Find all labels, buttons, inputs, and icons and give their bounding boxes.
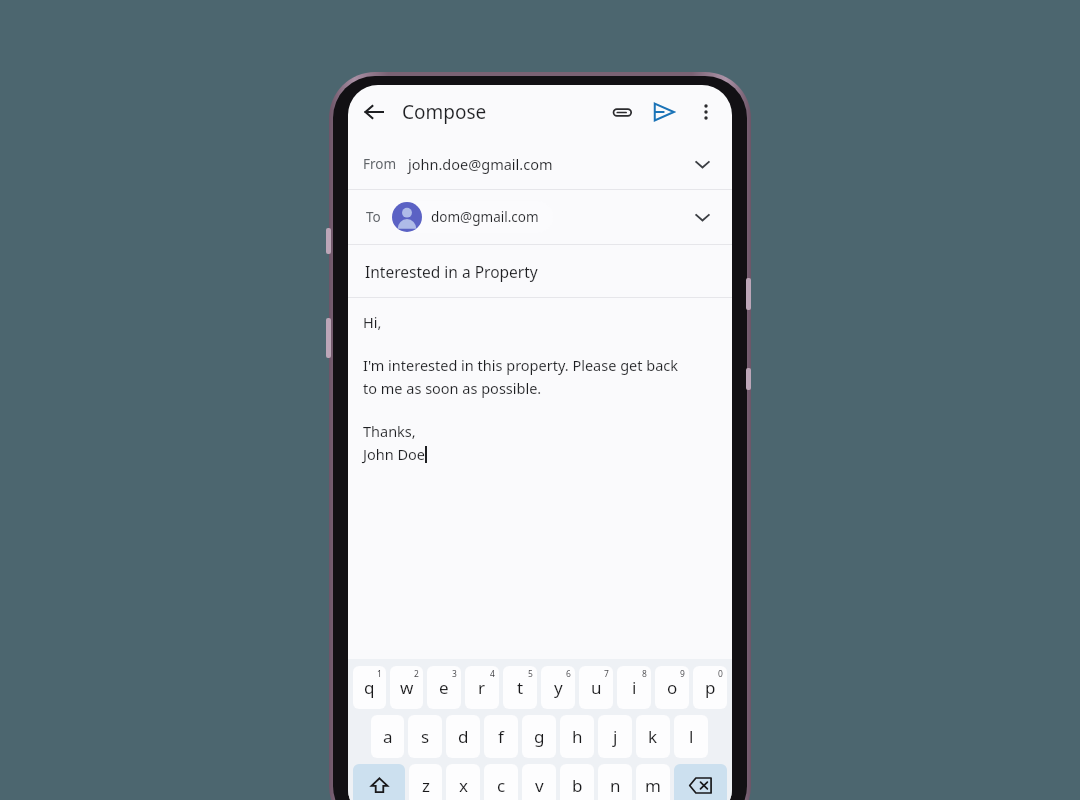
staticText: n: [610, 774, 621, 797]
staticText: a: [383, 725, 393, 748]
staticText: p: [705, 676, 716, 699]
button[interactable]: q: [353, 666, 386, 709]
button[interactable]: h: [560, 715, 594, 758]
button[interactable]: l: [674, 715, 708, 758]
staticText: h: [572, 725, 583, 748]
staticText: g: [534, 725, 545, 748]
button[interactable]: c: [484, 764, 518, 800]
staticText: Interested in a Property: [365, 261, 538, 282]
staticText: To: [366, 208, 381, 226]
button[interactable]: f: [484, 715, 518, 758]
staticText: dom@gmail.com: [431, 208, 539, 226]
button[interactable]: k: [636, 715, 670, 758]
staticText: b: [572, 774, 583, 797]
button[interactable]: Backspace: [674, 764, 727, 800]
staticText: m: [645, 774, 661, 797]
staticText: 6: [566, 668, 571, 680]
staticText: w: [400, 676, 414, 699]
button[interactable]: e: [427, 666, 461, 709]
staticText: c: [497, 774, 506, 797]
staticText: y: [554, 676, 563, 699]
staticText: 1: [377, 668, 382, 680]
button[interactable]: Interested in a Property: [348, 245, 732, 297]
staticText: j: [613, 725, 618, 748]
button[interactable]: Expand: [688, 150, 716, 178]
staticText: I'm interested in this property. Please …: [363, 355, 678, 375]
button[interactable]: g: [522, 715, 556, 758]
button[interactable]: y: [541, 666, 575, 709]
staticText: o: [667, 676, 678, 699]
button[interactable]: v: [522, 764, 556, 800]
button[interactable]: o: [655, 666, 689, 709]
button[interactable]: i: [617, 666, 651, 709]
button[interactable]: From: [348, 139, 732, 189]
staticText: d: [458, 725, 469, 748]
staticText: r: [478, 676, 486, 699]
button[interactable]: n: [598, 764, 632, 800]
staticText: k: [648, 725, 658, 748]
staticText: l: [689, 725, 694, 748]
staticText: john.doe@gmail.com: [408, 154, 553, 174]
staticText: f: [498, 725, 504, 748]
staticText: 7: [604, 668, 609, 680]
staticText: u: [591, 676, 602, 699]
staticText: 4: [490, 668, 495, 680]
button[interactable]: Back: [354, 92, 394, 132]
button[interactable]: Hi,: [348, 298, 732, 659]
button[interactable]: u: [579, 666, 613, 709]
button[interactable]: z: [409, 764, 442, 800]
button[interactable]: w: [390, 666, 423, 709]
button[interactable]: t: [503, 666, 537, 709]
button[interactable]: x: [446, 764, 480, 800]
staticText: e: [439, 676, 449, 699]
button[interactable]: b: [560, 764, 594, 800]
staticText: 2: [414, 668, 419, 680]
button[interactable]: To: [348, 190, 732, 244]
staticText: x: [459, 774, 468, 797]
staticText: 8: [642, 668, 647, 680]
staticText: i: [632, 676, 637, 699]
button[interactable]: Send: [642, 90, 686, 134]
staticText: Compose: [402, 99, 487, 125]
staticText: z: [422, 774, 430, 797]
button[interactable]: a: [371, 715, 404, 758]
staticText: t: [517, 676, 524, 699]
staticText: 9: [680, 668, 685, 680]
staticText: John Doe: [363, 444, 425, 464]
button[interactable]: r: [465, 666, 499, 709]
staticText: s: [421, 725, 430, 748]
button[interactable]: dom@gmail.com: [391, 201, 553, 233]
button[interactable]: d: [446, 715, 480, 758]
button[interactable]: p: [693, 666, 727, 709]
button[interactable]: s: [408, 715, 442, 758]
button[interactable]: More options: [686, 92, 726, 132]
button[interactable]: Attach file: [600, 91, 642, 133]
button[interactable]: j: [598, 715, 632, 758]
staticText: 3: [452, 668, 457, 680]
staticText: 5: [528, 668, 533, 680]
staticText: 0: [718, 668, 723, 680]
button[interactable]: Shift: [353, 764, 405, 800]
button[interactable]: m: [636, 764, 670, 800]
button[interactable]: Expand: [688, 203, 716, 231]
staticText: to me as soon as possible.: [363, 378, 542, 398]
staticText: Hi,: [363, 312, 382, 332]
staticText: v: [535, 774, 544, 797]
staticText: From: [363, 155, 397, 173]
staticText: Thanks,: [363, 421, 416, 441]
staticText: q: [364, 676, 375, 699]
